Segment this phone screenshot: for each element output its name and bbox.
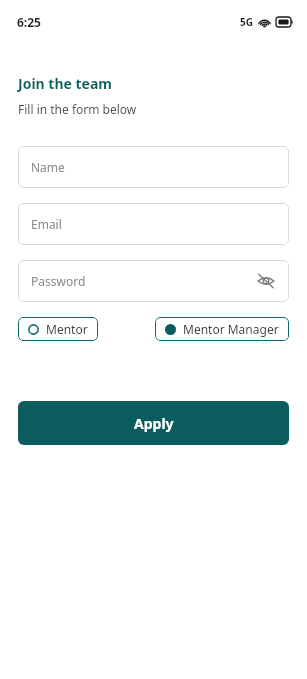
button[interactable]: Show password — [255, 270, 277, 292]
staticText: Name — [31, 159, 65, 175]
button[interactable]: Name — [18, 146, 289, 188]
staticText: Password — [31, 273, 86, 289]
staticText: Fill in the form below — [18, 101, 137, 117]
staticText: Apply — [134, 414, 174, 433]
button[interactable]: Mentor — [18, 317, 98, 341]
button[interactable]: Mentor Manager — [155, 317, 289, 341]
staticText: Join the team — [18, 74, 112, 93]
button[interactable]: Email — [18, 203, 289, 245]
staticText: Mentor — [46, 321, 88, 337]
staticText: Mentor Manager — [183, 321, 279, 337]
button[interactable]: Password — [18, 260, 289, 302]
button[interactable]: Apply — [18, 401, 289, 445]
staticText: Email — [31, 216, 62, 232]
staticText: 5G — [240, 15, 253, 29]
staticText: 6:25 — [17, 14, 41, 30]
